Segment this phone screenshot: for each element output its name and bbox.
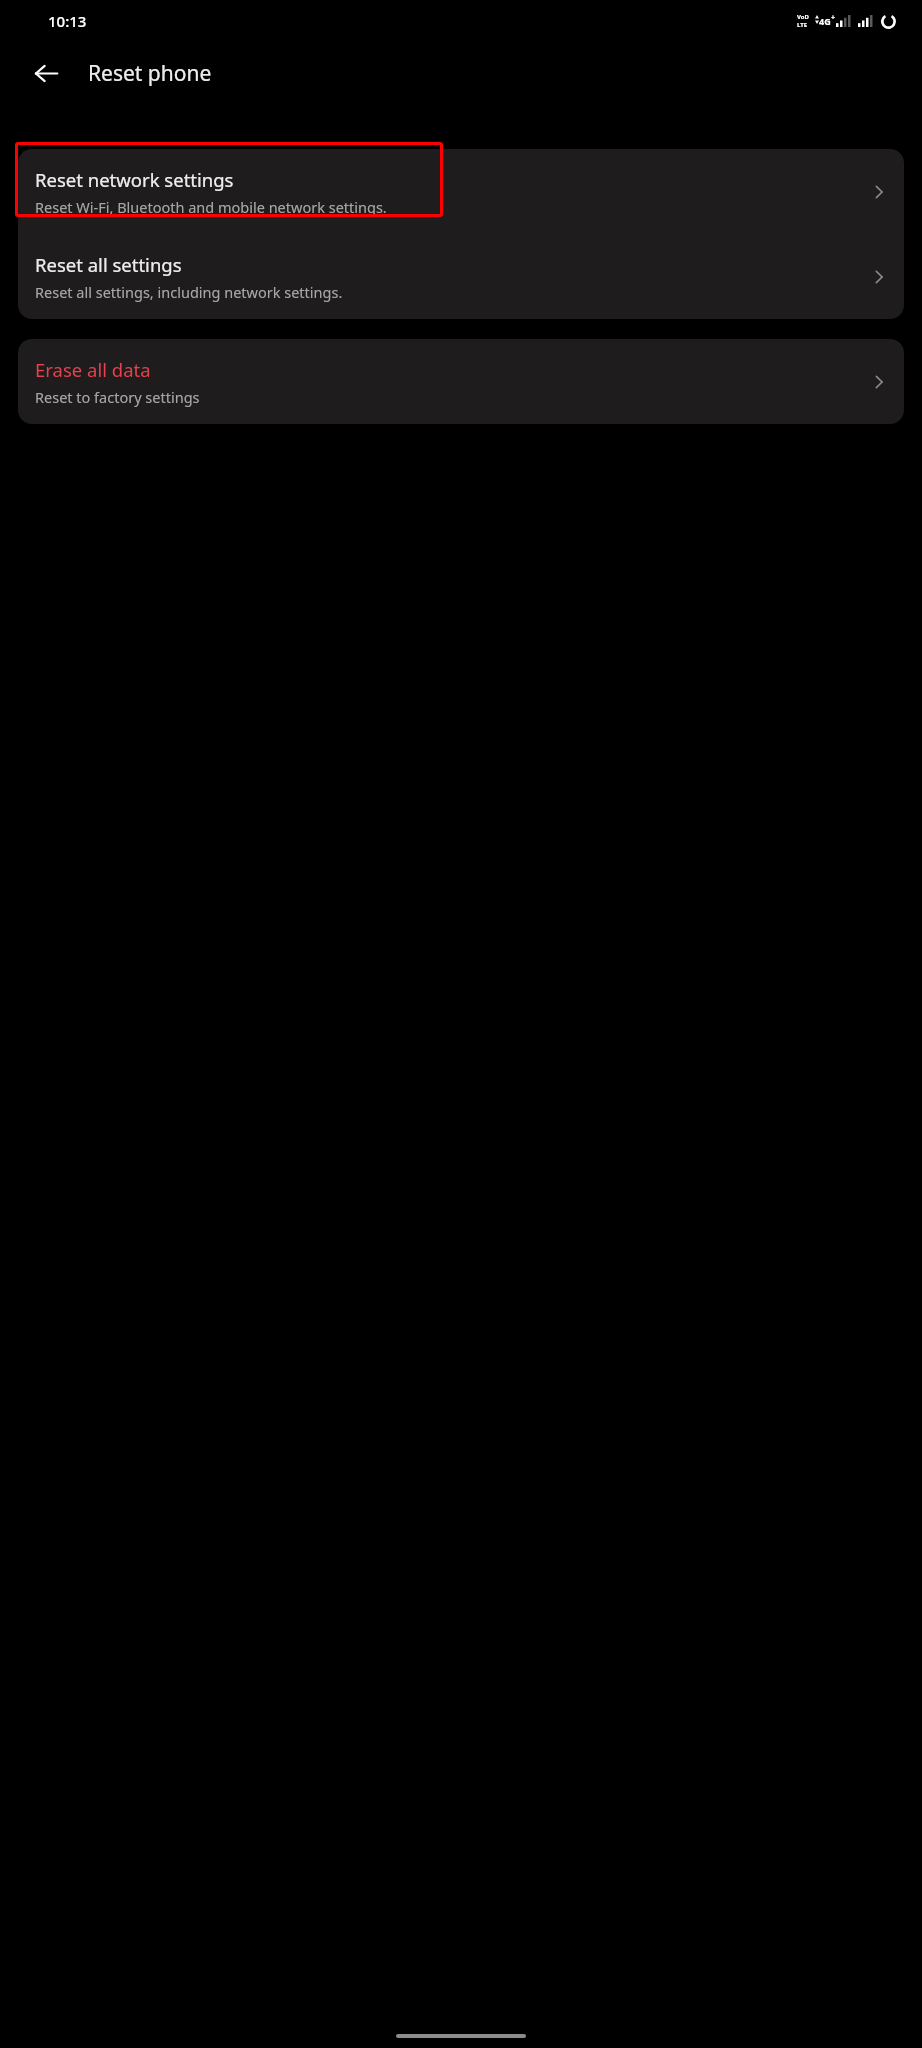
staticText: + (831, 13, 836, 23)
staticText: VoD (797, 13, 809, 21)
button[interactable]: Reset network settings (18, 149, 904, 234)
button[interactable]: Erase all data (18, 339, 904, 424)
staticText: Reset to factory settings (35, 387, 200, 407)
staticText: Reset network settings (35, 167, 234, 192)
button[interactable]: Back (22, 49, 70, 97)
staticText: LTE (797, 21, 808, 29)
staticText: Reset phone (88, 59, 212, 88)
staticText: Erase all data (35, 357, 151, 382)
staticText: Reset all settings, including network se… (35, 282, 343, 302)
staticText: Reset Wi-Fi, Bluetooth and mobile networ… (35, 197, 387, 217)
button[interactable]: Reset all settings (18, 234, 904, 319)
staticText: 10:13 (48, 11, 87, 31)
staticText: 4G (819, 15, 831, 27)
staticText: Reset all settings (35, 252, 182, 277)
